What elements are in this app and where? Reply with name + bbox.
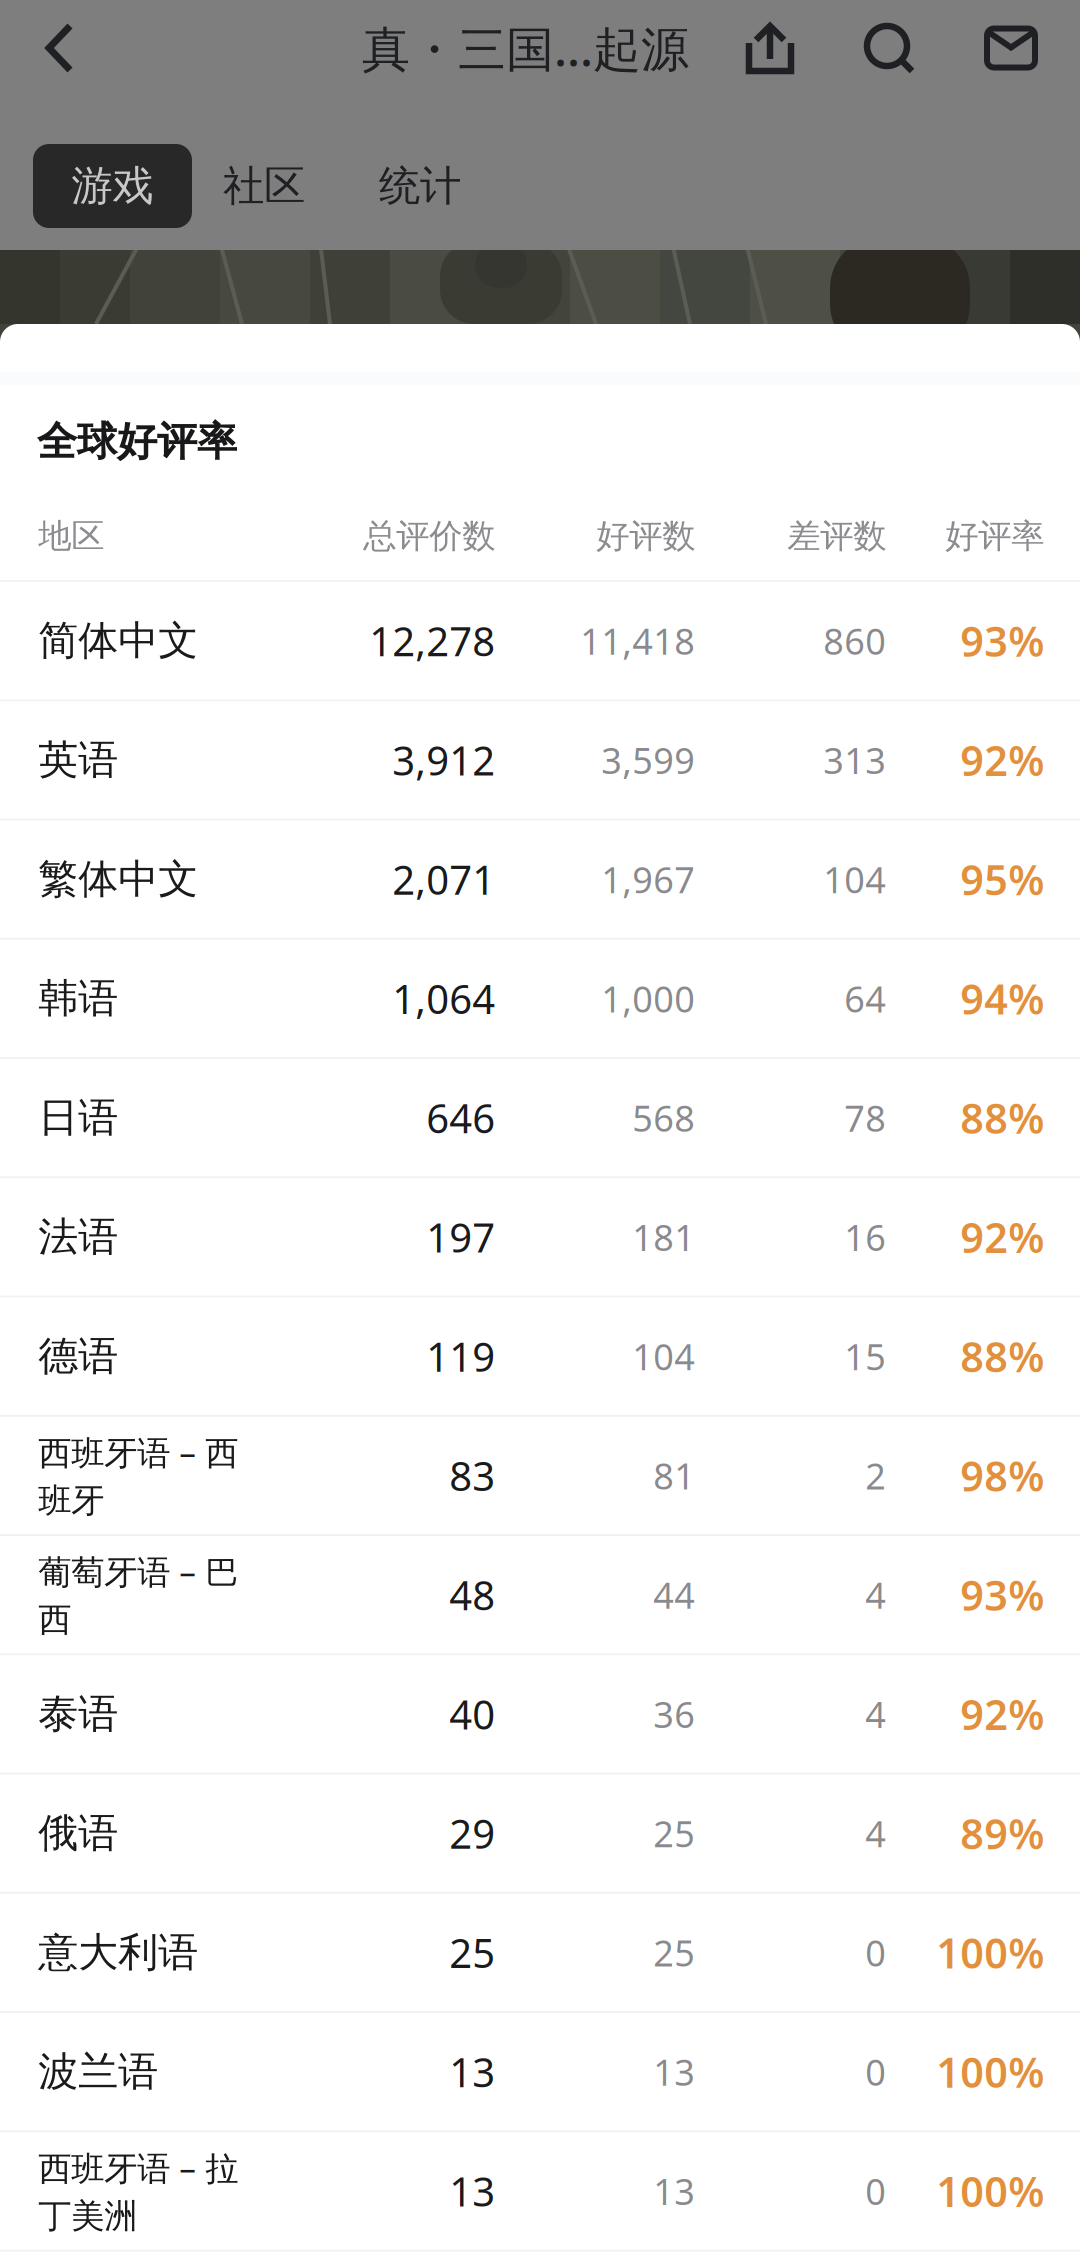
staticText: 韩语 (38, 974, 118, 1023)
button[interactable]: 意大利语 (0, 1894, 1080, 2011)
staticText: 100% (936, 1925, 1044, 1980)
staticText: 俄语 (38, 1809, 118, 1858)
button[interactable]: 葡萄牙语 – 巴 (0, 1536, 1080, 1653)
staticText: 好评数 (596, 516, 695, 557)
staticText: 13 (653, 2048, 695, 2096)
staticText: 15 (844, 1332, 886, 1380)
staticText: 25 (653, 1929, 695, 1976)
staticText: 104 (632, 1332, 695, 1380)
staticText: 真・三国...起源 (362, 16, 689, 80)
staticText: 2 (865, 1452, 886, 1499)
staticText: 4 (865, 1571, 886, 1619)
staticText: 98% (960, 1448, 1044, 1503)
staticText: 2,071 (392, 853, 495, 906)
staticText: 197 (426, 1210, 495, 1263)
button[interactable]: 德语 (0, 1298, 1080, 1415)
button[interactable]: 波兰语 (0, 2013, 1080, 2130)
staticText: 95% (960, 852, 1044, 907)
staticText: 1,000 (601, 975, 695, 1022)
staticText: 西 (38, 1599, 71, 1640)
staticText: 104 (823, 855, 886, 903)
button[interactable]: 韩语 (0, 940, 1080, 1057)
button[interactable]: 分享 (728, 0, 812, 96)
staticText: 1,967 (601, 855, 695, 903)
staticText: 29 (449, 1807, 495, 1860)
button[interactable]: 社区 (216, 144, 312, 228)
staticText: 西班牙语 – 西 (38, 1430, 238, 1474)
staticText: 法语 (38, 1212, 118, 1261)
staticText: 日语 (38, 1093, 118, 1142)
staticText: 0 (865, 2048, 886, 2096)
button[interactable]: 法语 (0, 1178, 1080, 1296)
button[interactable]: 统计 (372, 144, 468, 228)
staticText: 92% (960, 1210, 1044, 1264)
staticText: 83 (449, 1449, 495, 1502)
staticText: 100% (936, 2044, 1044, 2099)
staticText: 4 (865, 1690, 886, 1738)
staticText: 繁体中文 (38, 855, 198, 904)
staticText: 568 (632, 1094, 695, 1142)
staticText: 差评数 (787, 516, 886, 557)
button[interactable]: 搜索 (812, 0, 966, 96)
staticText: 葡萄牙语 – 巴 (38, 1549, 238, 1593)
button[interactable]: 繁体中文 (0, 821, 1080, 938)
button[interactable]: 西班牙语 – 拉 (0, 2132, 1080, 2250)
staticText: 88% (960, 1329, 1044, 1384)
staticText: 92% (960, 1687, 1044, 1741)
staticText: 总评价数 (363, 516, 495, 557)
button[interactable]: 返回 (0, 0, 120, 96)
staticText: 德语 (38, 1332, 118, 1381)
staticText: 0 (865, 2167, 886, 2215)
button[interactable]: 邮件 (966, 0, 1056, 96)
staticText: 11,418 (580, 617, 695, 665)
staticText: 94% (960, 971, 1044, 1026)
button[interactable]: 日语 (0, 1059, 1080, 1176)
staticText: 西班牙语 – 拉 (38, 2145, 238, 2190)
staticText: 地区 (38, 516, 104, 557)
button[interactable]: 俄语 (0, 1775, 1080, 1892)
staticText: 意大利语 (38, 1928, 198, 1977)
staticText: 88% (960, 1090, 1044, 1145)
staticText: 波兰语 (38, 2047, 158, 2096)
staticText: 64 (844, 975, 886, 1022)
button[interactable]: 西班牙语 – 西 (0, 1417, 1080, 1534)
staticText: 社区 (223, 161, 305, 211)
staticText: 36 (653, 1690, 695, 1738)
button[interactable]: 英语 (0, 701, 1080, 819)
staticText: 860 (823, 617, 886, 665)
staticText: 统计 (379, 161, 461, 211)
button[interactable]: 游戏 (33, 144, 192, 228)
button[interactable]: 泰语 (0, 1655, 1080, 1773)
staticText: 12,278 (369, 614, 495, 667)
staticText: 78 (844, 1094, 886, 1142)
staticText: 119 (426, 1330, 495, 1383)
staticText: 25 (449, 1926, 495, 1979)
staticText: 93% (960, 613, 1044, 668)
button[interactable]: 简体中文 (0, 582, 1080, 699)
staticText: 3,912 (392, 733, 495, 786)
staticText: 13 (449, 2164, 495, 2217)
staticText: 81 (653, 1452, 695, 1499)
staticText: 181 (632, 1213, 695, 1261)
staticText: 简体中文 (38, 616, 198, 665)
staticText: 16 (844, 1213, 886, 1261)
staticText: 全球好评率 (37, 417, 237, 466)
staticText: 313 (823, 736, 886, 784)
staticText: 89% (960, 1806, 1044, 1861)
staticText: 4 (865, 1809, 886, 1857)
staticText: 13 (449, 2045, 495, 2098)
staticText: 班牙 (38, 1480, 104, 1521)
staticText: 100% (936, 2164, 1044, 2218)
staticText: 泰语 (38, 1689, 118, 1738)
staticText: 游戏 (71, 161, 153, 211)
staticText: 1,064 (392, 972, 495, 1025)
staticText: 英语 (38, 735, 118, 784)
staticText: 丁美洲 (38, 2196, 137, 2237)
staticText: 40 (449, 1687, 495, 1740)
staticText: 13 (653, 2167, 695, 2215)
staticText: 25 (653, 1809, 695, 1857)
staticText: 48 (449, 1568, 495, 1621)
staticText: 93% (960, 1567, 1044, 1622)
staticText: 好评率 (945, 516, 1044, 557)
staticText: 3,599 (601, 736, 695, 784)
